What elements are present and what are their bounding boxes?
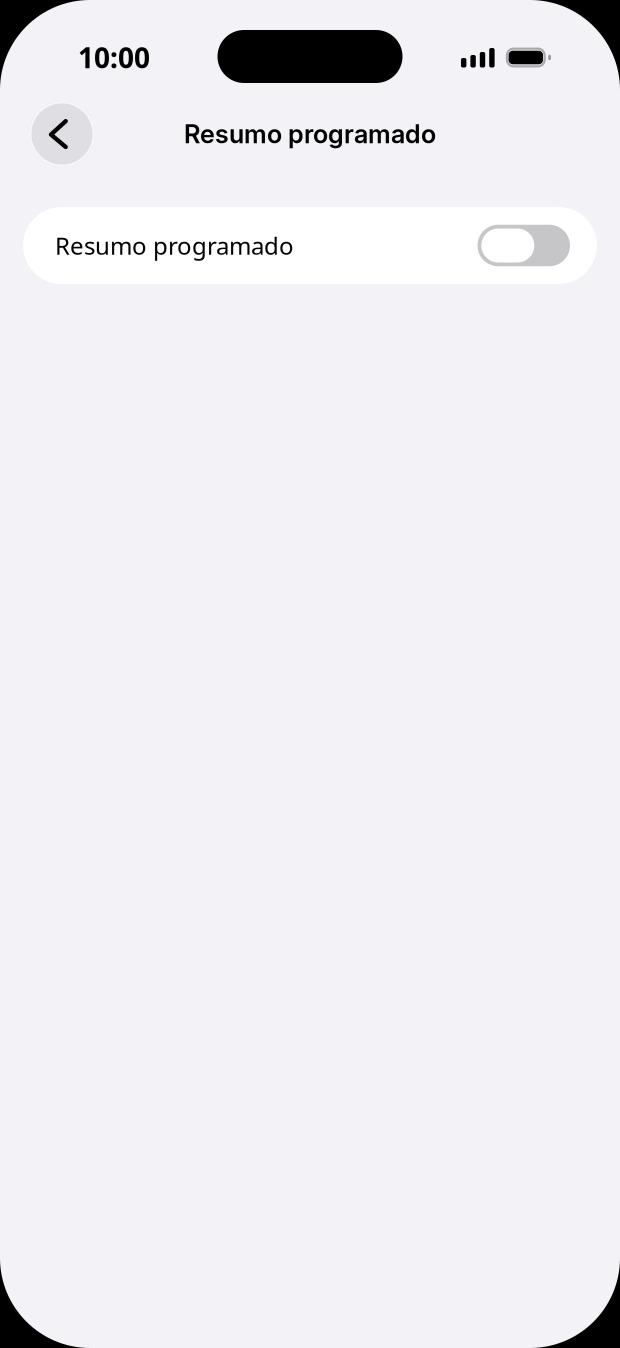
staticText: Resumo programado bbox=[184, 119, 436, 149]
button[interactable]: Back bbox=[29, 101, 95, 167]
staticText: 10:00 bbox=[78, 39, 150, 76]
staticText: Resumo programado bbox=[55, 230, 294, 261]
button[interactable]: Resumo programado bbox=[23, 207, 597, 284]
